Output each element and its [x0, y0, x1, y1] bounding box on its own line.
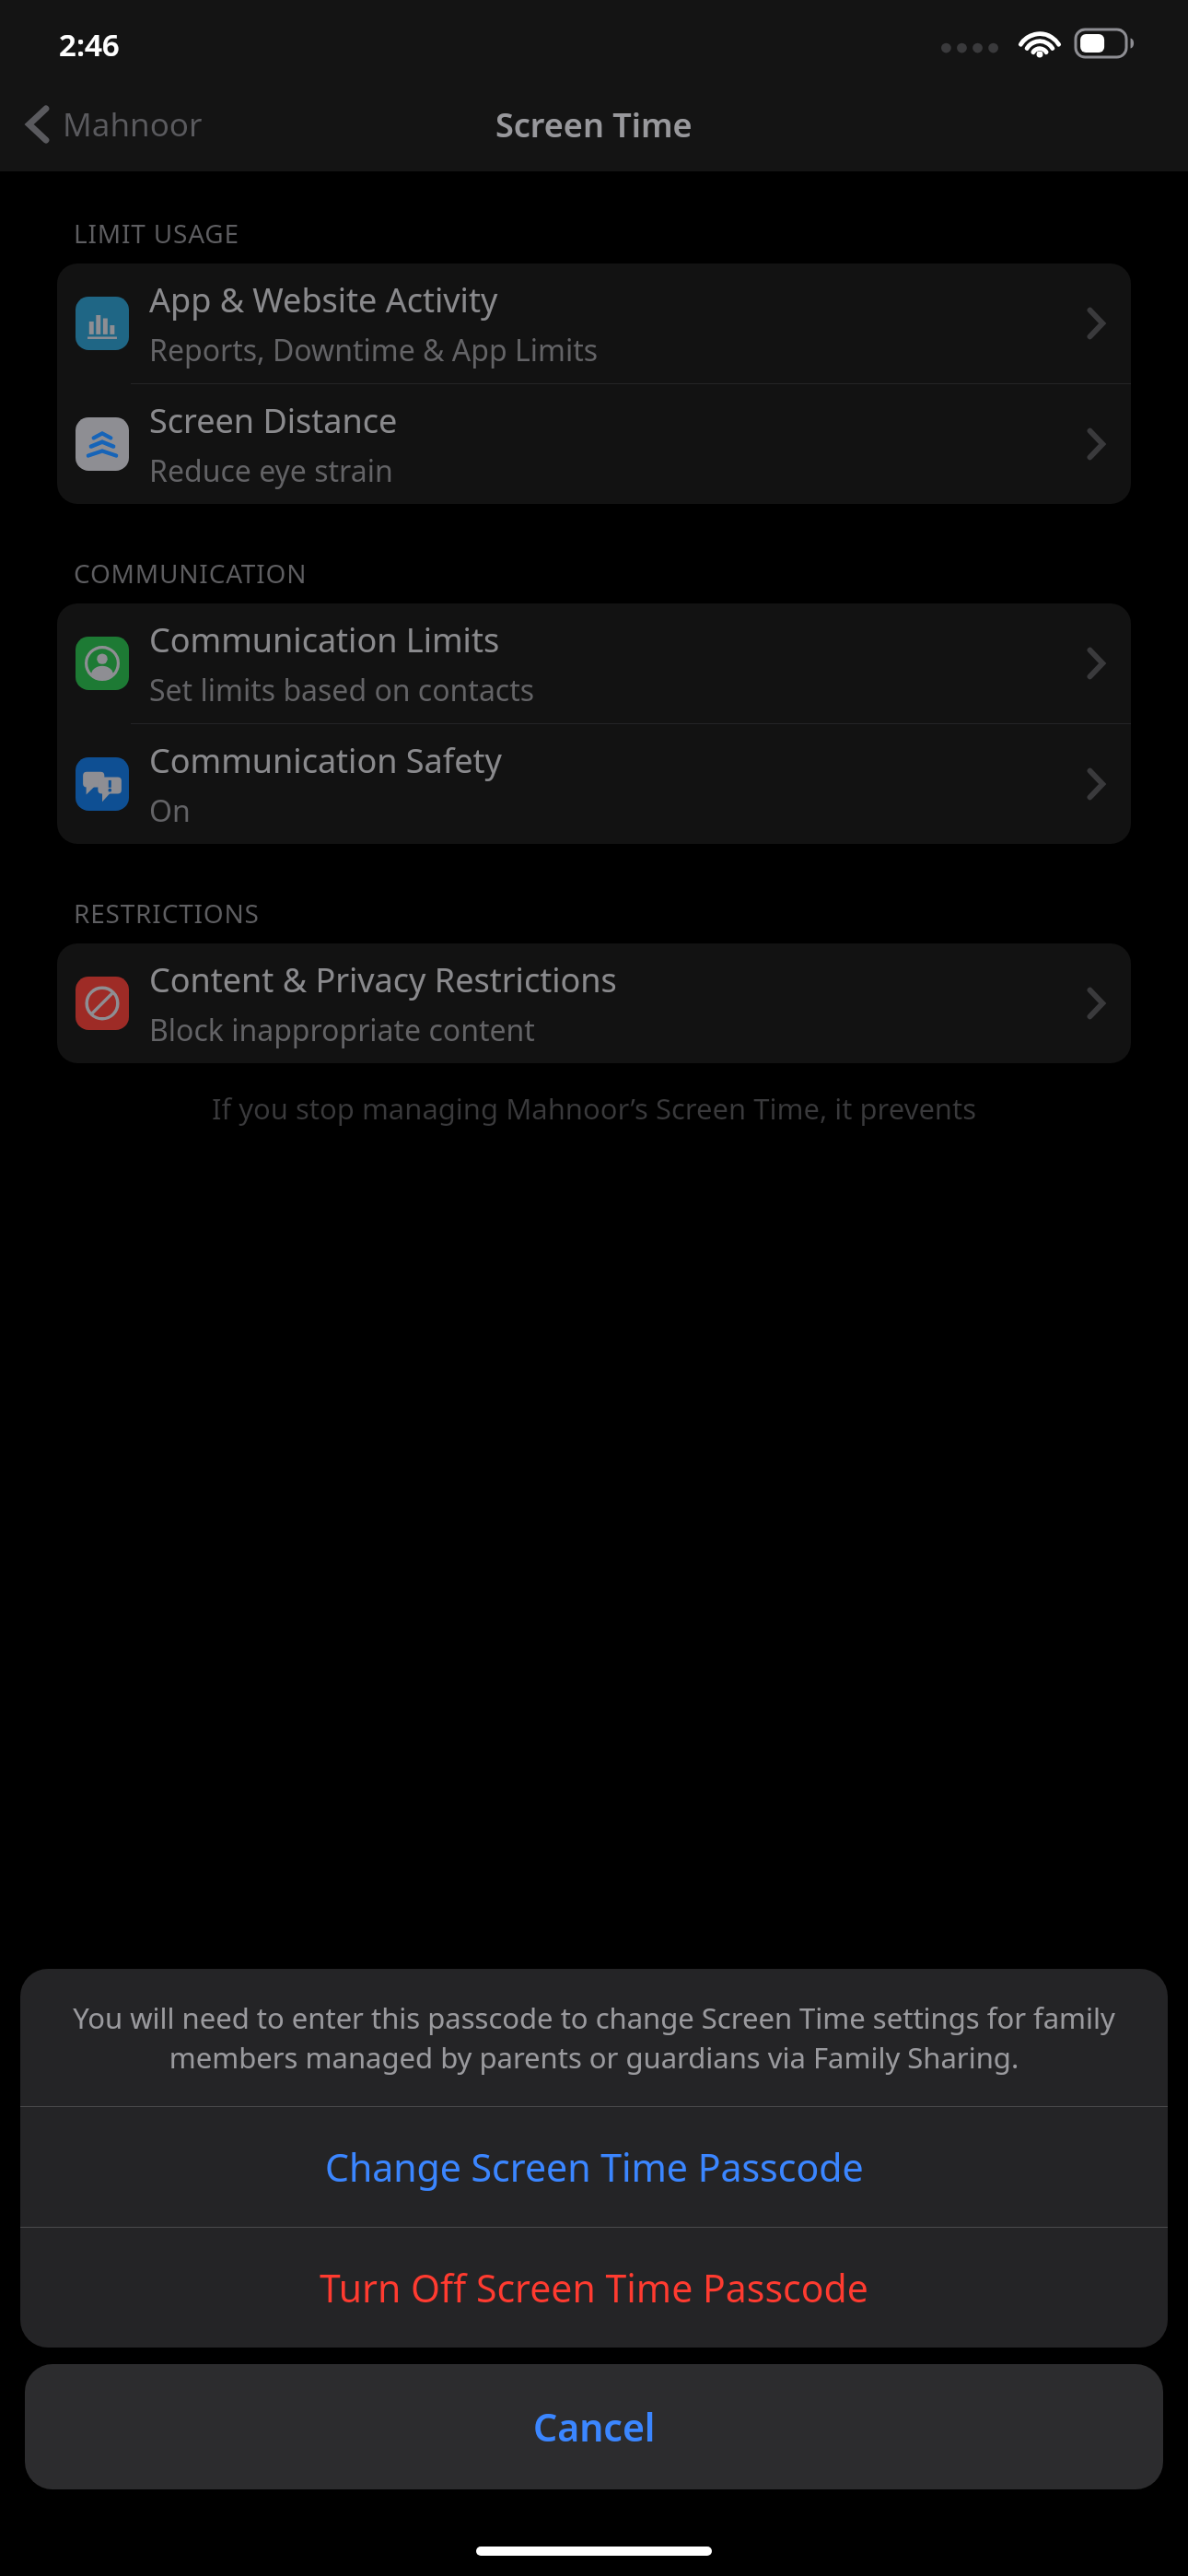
- staticText: COMMUNICATION: [74, 556, 308, 591]
- staticText: You will need to enter this passcode to …: [61, 1998, 1127, 2077]
- button[interactable]: Content and Privacy Restrictions: [57, 943, 1131, 1063]
- staticText: RESTRICTIONS: [74, 896, 260, 931]
- button[interactable]: Cancel: [25, 2364, 1163, 2489]
- button[interactable]: App and Website Activity: [57, 263, 1131, 383]
- staticText: Screen Time: [495, 102, 693, 147]
- staticText: Set limits based on contacts: [149, 670, 535, 710]
- staticText: Content & Privacy Restrictions: [149, 957, 617, 1002]
- other: Content and Privacy Restrictions: [76, 977, 129, 1030]
- button[interactable]: Turn Off Screen Time Passcode: [20, 2228, 1168, 2348]
- staticText: Turn Off Screen Time Passcode: [320, 2262, 868, 2313]
- staticText: App & Website Activity: [149, 277, 498, 322]
- staticText: LIMIT USAGE: [74, 216, 239, 251]
- other: Screen Distance: [76, 417, 129, 471]
- staticText: 2:46: [59, 24, 120, 65]
- other: Communication Safety: [76, 757, 129, 811]
- button[interactable]: Communication Limits: [57, 603, 1131, 723]
- other: Communication Limits: [76, 637, 129, 690]
- staticText: Communication Limits: [149, 617, 500, 662]
- button[interactable]: Communication Safety: [57, 724, 1131, 844]
- button[interactable]: Change Screen Time Passcode: [20, 2107, 1168, 2227]
- staticText: Block inappropriate content: [149, 1010, 535, 1050]
- staticText: Screen Distance: [149, 398, 398, 443]
- staticText: Change Screen Time Passcode: [325, 2141, 864, 2193]
- staticText: Communication Safety: [149, 738, 502, 783]
- other: App and Website Activity: [76, 297, 129, 350]
- staticText: Cancel: [533, 2401, 656, 2453]
- staticText: If you stop managing Mahnoor’s Screen Ti…: [55, 1089, 1133, 1128]
- button[interactable]: Screen Distance: [57, 384, 1131, 504]
- staticText: Reports, Downtime & App Limits: [149, 330, 599, 370]
- staticText: On: [149, 790, 191, 831]
- staticText: Reduce eye strain: [149, 451, 393, 491]
- button[interactable]: Mahnoor: [0, 91, 219, 158]
- staticText: Mahnoor: [63, 102, 203, 146]
